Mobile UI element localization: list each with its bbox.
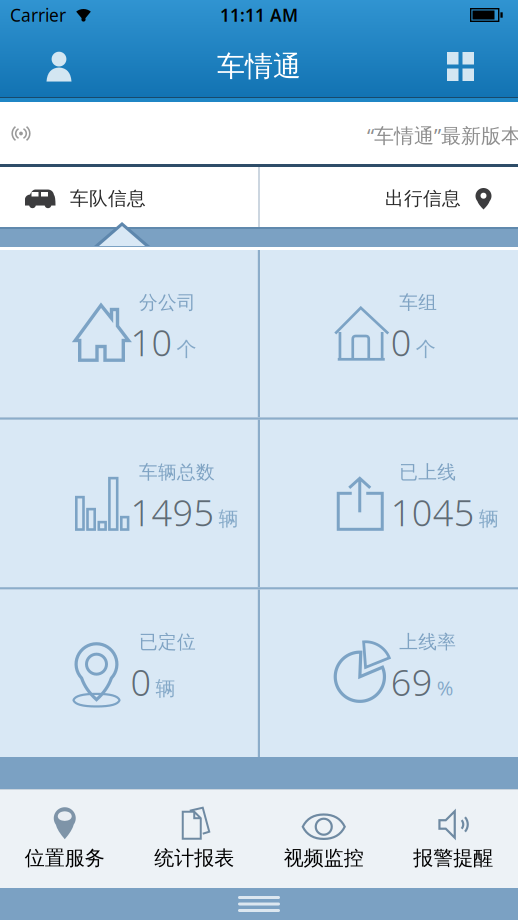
staticText: % bbox=[437, 674, 454, 701]
staticText: 已定位 bbox=[139, 631, 196, 654]
button[interactable]: 统计报表 bbox=[129, 790, 259, 888]
staticText: 视频监控 bbox=[284, 846, 364, 870]
staticText: 个 bbox=[176, 337, 196, 361]
staticText: Carrier bbox=[10, 3, 66, 26]
staticText: 车队信息 bbox=[70, 187, 146, 210]
staticText: 1495 bbox=[130, 488, 214, 536]
button[interactable]: More options bbox=[0, 888, 518, 920]
button[interactable]: 车组 bbox=[260, 250, 518, 417]
button[interactable]: 上线率 bbox=[260, 590, 518, 757]
staticText: 已上线 bbox=[399, 461, 456, 484]
button[interactable]: 报警提醒 bbox=[388, 790, 518, 888]
staticText: 车辆总数 bbox=[139, 461, 215, 484]
staticText: 69 bbox=[391, 658, 433, 706]
staticText: 1045 bbox=[391, 488, 475, 536]
staticText: 位置服务 bbox=[25, 846, 105, 870]
button[interactable]: 出行信息 bbox=[260, 167, 518, 230]
staticText: 0 bbox=[391, 318, 412, 366]
button[interactable]: 车辆总数 bbox=[0, 420, 258, 587]
button[interactable]: 视频监控 bbox=[259, 790, 388, 888]
button[interactable]: Account bbox=[0, 30, 93, 97]
staticText: 0 bbox=[130, 658, 151, 706]
staticText: 统计报表 bbox=[154, 846, 234, 870]
button[interactable]: 车队信息 bbox=[0, 167, 258, 230]
button[interactable]: 分公司 bbox=[0, 250, 258, 417]
staticText: 10 bbox=[130, 318, 172, 366]
staticText: 出行信息 bbox=[385, 187, 461, 210]
button[interactable]: Apps bbox=[427, 30, 518, 97]
button[interactable]: 位置服务 bbox=[0, 790, 129, 888]
staticText: “车情通”最新版本功能 bbox=[367, 122, 518, 149]
staticText: 车组 bbox=[399, 291, 437, 314]
staticText: 个 bbox=[416, 337, 436, 361]
button[interactable]: 已上线 bbox=[260, 420, 518, 587]
staticText: 分公司 bbox=[139, 291, 196, 314]
staticText: 车情通 bbox=[217, 49, 301, 84]
staticText: 上线率 bbox=[399, 631, 456, 654]
staticText: 11:11 AM bbox=[220, 3, 298, 26]
staticText: 辆 bbox=[155, 676, 175, 701]
button[interactable]: 已定位 bbox=[0, 590, 258, 757]
staticText: 辆 bbox=[479, 507, 499, 531]
staticText: 报警提醒 bbox=[413, 846, 493, 870]
staticText: 辆 bbox=[218, 507, 238, 531]
